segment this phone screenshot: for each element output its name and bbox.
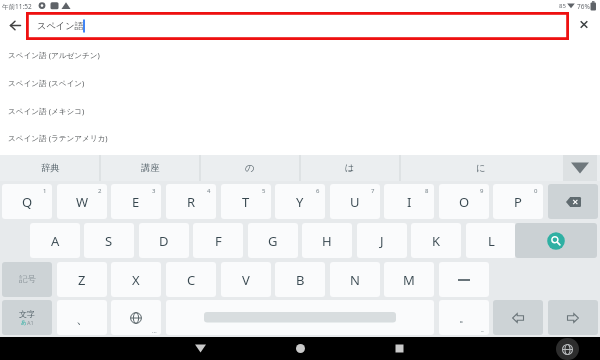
button[interactable]: E	[111, 184, 161, 219]
staticText: H	[322, 232, 332, 250]
staticText: 辞典	[41, 162, 60, 174]
button[interactable]: 。	[439, 300, 489, 335]
staticText: X	[132, 271, 140, 289]
button[interactable]: D	[139, 223, 189, 258]
staticText: 午前11:52	[2, 2, 32, 11]
staticText: スペイン語	[37, 20, 84, 32]
staticText: 講座	[141, 162, 160, 174]
button[interactable]: Y	[275, 184, 325, 219]
staticText: 6	[316, 187, 320, 195]
button[interactable]	[548, 184, 598, 219]
staticText: Q	[22, 193, 33, 211]
button[interactable]: F	[193, 223, 243, 258]
staticText: 76%	[577, 2, 590, 11]
staticText: P	[514, 193, 522, 211]
button[interactable]	[493, 300, 543, 335]
staticText: スペイン語 (メキシコ)	[8, 106, 85, 116]
button[interactable]	[574, 15, 594, 35]
button[interactable]: O	[439, 184, 489, 219]
button[interactable]: X	[111, 262, 161, 297]
staticText: C	[187, 271, 196, 289]
staticText: スペイン語 (スペイン)	[8, 78, 85, 88]
button[interactable]: スペイン語 (アルゼンチン)	[0, 41, 600, 69]
button[interactable]: P	[493, 184, 543, 219]
button[interactable]: スペイン語 (スペイン)	[0, 69, 600, 97]
staticText: M	[403, 271, 415, 289]
button[interactable]	[288, 337, 312, 360]
staticText: U	[350, 193, 360, 211]
button[interactable]: スペイン語	[26, 12, 569, 40]
button[interactable]	[556, 338, 579, 360]
staticText: R	[187, 193, 196, 211]
button[interactable]: 記号	[2, 262, 52, 297]
staticText: N	[350, 271, 360, 289]
button[interactable]	[387, 337, 411, 360]
staticText: 8	[425, 187, 429, 195]
staticText: 、	[76, 310, 89, 326]
staticText: L	[488, 232, 495, 250]
staticText: Z	[78, 271, 86, 289]
button[interactable]	[166, 300, 434, 335]
button[interactable]	[439, 262, 489, 297]
button[interactable]: A	[30, 223, 80, 258]
button[interactable]: は	[300, 155, 400, 181]
staticText: に	[476, 162, 486, 174]
button[interactable]: スペイン語 (ラテンアメリカ)	[0, 124, 600, 152]
staticText: あ	[21, 319, 27, 326]
button[interactable]: C	[166, 262, 216, 297]
button[interactable]: 、	[57, 300, 107, 335]
staticText: は	[345, 162, 355, 174]
button[interactable]	[6, 15, 26, 35]
staticText: の	[245, 162, 255, 174]
staticText: I	[407, 193, 412, 211]
button[interactable]: 講座	[100, 155, 200, 181]
button[interactable]: 辞典	[0, 155, 100, 181]
staticText: 85	[559, 2, 566, 10]
staticText: A	[51, 232, 60, 250]
staticText: A1	[27, 319, 34, 326]
button[interactable]: …	[111, 300, 161, 335]
button[interactable]: L	[466, 223, 516, 258]
staticText: 9	[480, 187, 484, 195]
staticText: D	[159, 232, 169, 250]
button[interactable]: Q	[2, 184, 52, 219]
staticText: 5	[262, 187, 266, 195]
button[interactable]: 文字	[2, 300, 52, 335]
button[interactable]: スペイン語 (メキシコ)	[0, 97, 600, 125]
button[interactable]: S	[84, 223, 134, 258]
button[interactable]: I	[384, 184, 434, 219]
button[interactable]	[188, 337, 212, 360]
staticText: 1	[43, 187, 47, 195]
button[interactable]: T	[221, 184, 271, 219]
button[interactable]: Z	[57, 262, 107, 297]
button[interactable]: U	[330, 184, 380, 219]
button[interactable]: の	[200, 155, 300, 181]
button[interactable]: N	[330, 262, 380, 297]
staticText: T	[242, 193, 250, 211]
button[interactable]: V	[221, 262, 271, 297]
button[interactable]: M	[384, 262, 434, 297]
staticText: S	[105, 232, 113, 250]
staticText: J	[380, 232, 384, 250]
staticText: 0	[534, 187, 538, 195]
button[interactable]: B	[275, 262, 325, 297]
staticText: …	[152, 327, 157, 335]
button[interactable]: J	[357, 223, 407, 258]
button[interactable]: H	[302, 223, 352, 258]
staticText: O	[459, 193, 470, 211]
button[interactable]: に	[400, 155, 562, 181]
button[interactable]: R	[166, 184, 216, 219]
staticText: 。	[459, 311, 470, 325]
staticText: 2	[98, 187, 102, 195]
button[interactable]: G	[248, 223, 298, 258]
button[interactable]: W	[57, 184, 107, 219]
staticText: _	[481, 325, 484, 333]
staticText: Y	[296, 193, 304, 211]
button[interactable]	[563, 155, 597, 181]
button[interactable]	[548, 300, 598, 335]
staticText: K	[432, 232, 441, 250]
staticText: 文字	[19, 309, 35, 319]
button[interactable]: K	[411, 223, 461, 258]
staticText: G	[268, 232, 278, 250]
button[interactable]	[515, 223, 597, 258]
